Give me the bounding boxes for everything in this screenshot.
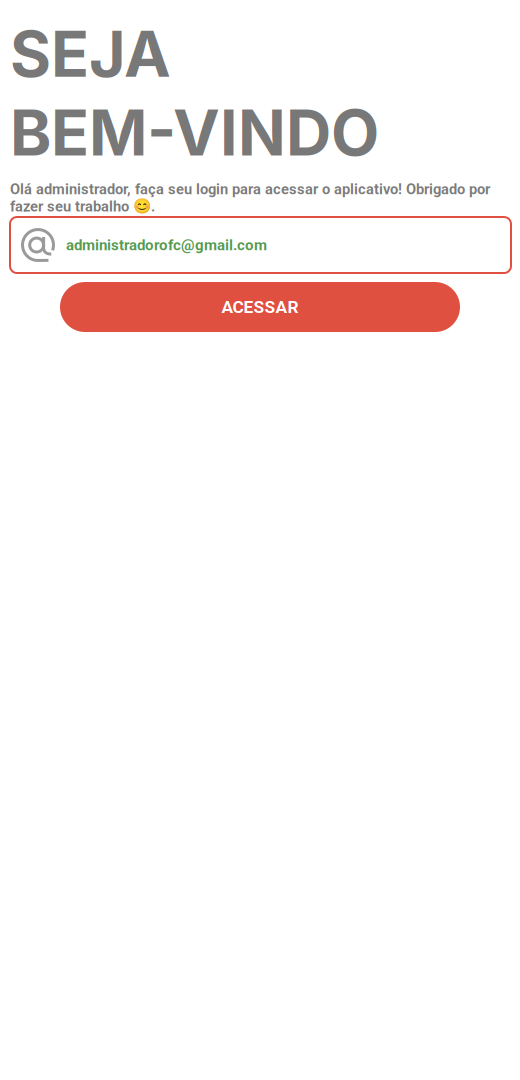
staticText: Olá administrador, faça seu login para a… bbox=[10, 181, 490, 215]
staticText: ACESSAR bbox=[221, 297, 298, 317]
staticText: administradorofc@gmail.com bbox=[66, 236, 267, 254]
staticText: BEM-VINDO bbox=[10, 95, 379, 171]
staticText: SEJA bbox=[10, 16, 171, 92]
button[interactable]: ACESSAR bbox=[60, 282, 460, 332]
button[interactable]: E-mail: administradorofc@gmail.com bbox=[10, 217, 511, 273]
